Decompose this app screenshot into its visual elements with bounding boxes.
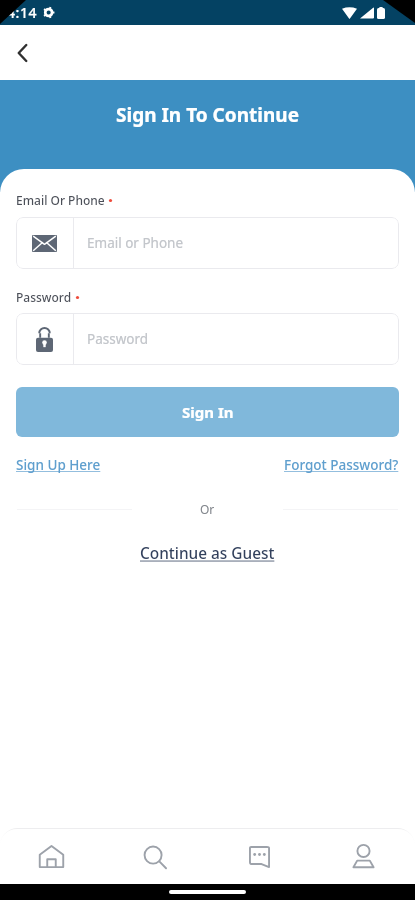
button[interactable]: Home — [0, 829, 103, 884]
staticText: Sign In To Continue — [116, 102, 299, 128]
staticText: Password — [16, 289, 72, 305]
staticText: Or — [200, 501, 215, 517]
staticText: Forgot Password? — [284, 456, 399, 474]
button[interactable]: Back — [2, 33, 42, 73]
button[interactable]: Sign In — [16, 387, 399, 437]
staticText: Email Or Phone — [16, 192, 105, 208]
button[interactable]: Email or phone input — [16, 217, 399, 269]
staticText: Sign Up Here — [16, 456, 101, 474]
staticText: 4:14 — [7, 3, 38, 22]
button[interactable]: Forgot Password? — [284, 456, 399, 474]
button[interactable]: Sign Up Here — [16, 456, 101, 474]
button[interactable]: Messages — [207, 829, 311, 884]
button[interactable]: Password input — [16, 313, 399, 365]
button[interactable]: Profile — [311, 829, 415, 884]
staticText: Sign In — [182, 402, 234, 422]
staticText: Email or Phone — [87, 234, 184, 252]
button[interactable]: Search — [103, 829, 207, 884]
staticText: Password — [87, 330, 149, 348]
button[interactable]: Continue as Guest — [140, 543, 275, 564]
staticText: Continue as Guest — [140, 543, 275, 564]
